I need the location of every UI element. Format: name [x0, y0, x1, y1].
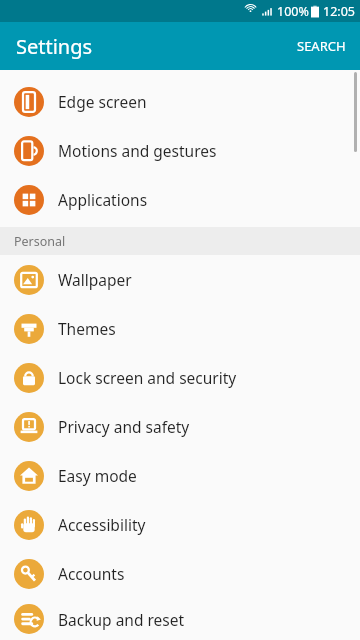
- button[interactable]: Wallpaper: [0, 255, 360, 304]
- button[interactable]: Themes: [0, 304, 360, 353]
- staticText: Backup and reset: [58, 609, 185, 630]
- staticText: Edge screen: [58, 91, 147, 112]
- staticText: Lock screen and security: [58, 367, 237, 388]
- staticText: Settings: [16, 33, 93, 60]
- button[interactable]: Backup and reset: [0, 598, 360, 640]
- button[interactable]: Privacy and safety: [0, 402, 360, 451]
- staticText: Wallpaper: [58, 269, 132, 290]
- button[interactable]: Easy mode: [0, 451, 360, 500]
- staticText: Personal: [14, 233, 66, 250]
- staticText: Applications: [58, 189, 148, 210]
- staticText: Accounts: [58, 563, 125, 584]
- staticText: Easy mode: [58, 465, 137, 486]
- button[interactable]: Applications: [0, 175, 360, 224]
- staticText: Motions and gestures: [58, 140, 217, 161]
- button[interactable]: Edge screen: [0, 77, 360, 126]
- staticText: Privacy and safety: [58, 416, 190, 437]
- staticText: 100%: [277, 3, 309, 20]
- button[interactable]: Accessibility: [0, 500, 360, 549]
- staticText: 12:05: [323, 3, 355, 20]
- button[interactable]: Motions and gestures: [0, 126, 360, 175]
- staticText: SEARCH: [297, 37, 346, 55]
- staticText: Accessibility: [58, 514, 146, 535]
- button[interactable]: Accounts: [0, 549, 360, 598]
- button[interactable]: SEARCH: [283, 25, 360, 67]
- staticText: Themes: [58, 318, 116, 339]
- button[interactable]: Lock screen and security: [0, 353, 360, 402]
